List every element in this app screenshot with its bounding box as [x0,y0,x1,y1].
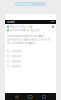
staticText: option [11,54,21,58]
staticText: option [11,59,21,63]
staticText: option [11,49,21,53]
staticText: search [7,20,15,24]
staticText: pronunciation guide [10,28,40,32]
staticText: DICTIONARY [15,0,46,8]
staticText: ◁ [15,94,18,99]
staticText: Word of the day [10,25,32,28]
staticText: ◯ [28,94,32,99]
staticText: option [11,64,21,68]
staticText: ••• [51,20,54,24]
staticText: ▢ [42,94,46,99]
staticText: Lorem ipsum dolor sit amet, consectetur … [7,34,50,45]
